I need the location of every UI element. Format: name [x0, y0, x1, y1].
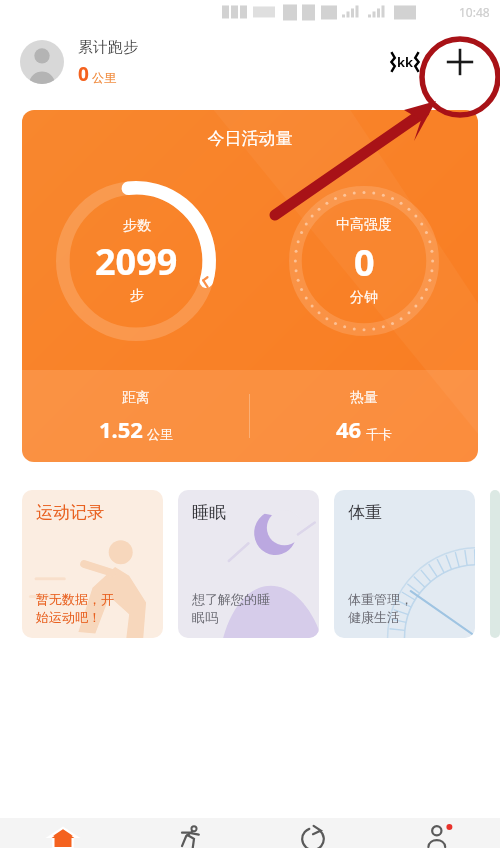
staticText: 千卡	[366, 426, 392, 442]
staticText: kk	[397, 53, 414, 71]
staticText: 1.52	[99, 414, 143, 444]
button[interactable]: Exercise	[125, 818, 250, 848]
staticText: 公里	[147, 426, 173, 442]
staticText: 步	[130, 287, 144, 305]
staticText: 0	[354, 238, 375, 287]
staticText: 热量	[350, 389, 378, 407]
button[interactable]: 体重	[334, 490, 475, 638]
button[interactable]: 热量	[250, 370, 478, 462]
button[interactable]	[490, 490, 500, 638]
button[interactable]: Add	[440, 42, 480, 82]
staticText: 睡眠	[192, 502, 226, 523]
staticText: 10:48	[459, 4, 490, 20]
button[interactable]: Me	[375, 818, 500, 848]
button[interactable]: 距离	[22, 370, 249, 462]
button[interactable]: 累计跑步	[78, 38, 388, 87]
staticText: 体重管理， 健康生活	[348, 591, 413, 626]
staticText: 0	[78, 61, 89, 87]
staticText: 想了解您的睡 眠吗	[192, 591, 270, 626]
staticText: 距离	[122, 389, 150, 407]
button[interactable]: 运动记录	[22, 490, 163, 638]
staticText: 公里	[92, 70, 116, 85]
staticText: 暂无数据，开 始运动吧！	[36, 591, 114, 626]
button[interactable]: 今日活动量	[22, 110, 478, 462]
button[interactable]: Home	[0, 818, 125, 848]
staticText: 体重	[348, 502, 382, 523]
staticText: 46	[336, 414, 362, 444]
staticText: 步数	[123, 217, 151, 235]
staticText: 分钟	[350, 289, 378, 307]
staticText: 今日活动量	[22, 128, 478, 149]
button[interactable]: Sync	[250, 818, 375, 848]
staticText: 运动记录	[36, 502, 104, 523]
button[interactable]: Profile avatar	[20, 40, 64, 84]
staticText: 累计跑步	[78, 38, 138, 57]
staticText: 2099	[95, 237, 178, 286]
staticText: 中高强度	[336, 216, 392, 234]
button[interactable]: kk	[388, 49, 422, 75]
button[interactable]: 睡眠	[178, 490, 319, 638]
